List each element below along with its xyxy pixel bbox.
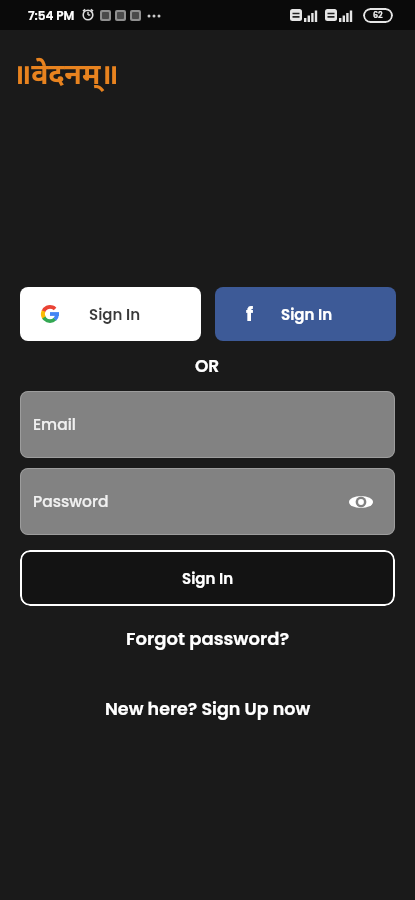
staticText: Forgot password? [126,626,290,651]
button[interactable]: f [215,287,396,341]
staticText: Email [33,414,76,436]
staticText: 62 [373,10,383,21]
staticText: Sign In [89,304,141,325]
button[interactable] [349,493,373,511]
staticText: Sign In [182,568,234,589]
staticText: ॥वेदनम्॥ [13,54,119,93]
button[interactable]: Sign In [20,287,201,341]
button[interactable]: Password [20,468,395,535]
staticText: New here? Sign Up now [105,697,311,722]
staticText: OR [195,354,220,378]
button[interactable]: Forgot password? [126,626,290,651]
staticText: Password [33,491,109,513]
staticText: Sign In [281,304,333,325]
staticText: f [246,300,254,328]
button[interactable]: Email [20,391,395,458]
button[interactable]: New here? Sign Up now [105,697,311,722]
button[interactable]: Sign In [20,550,395,606]
staticText: 7:54 PM [28,7,75,24]
